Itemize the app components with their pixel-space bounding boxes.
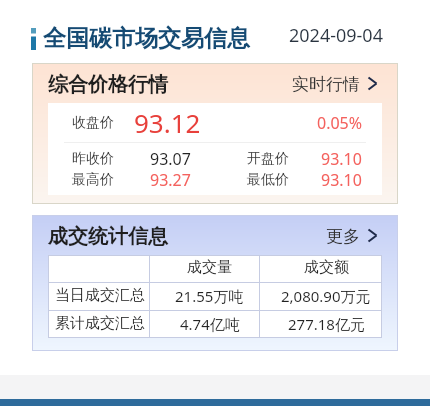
staticText: 当日成交汇总 <box>55 286 145 305</box>
staticText: 4.74亿吨 <box>180 314 240 334</box>
staticText: 93.07 <box>150 148 191 169</box>
staticText: 收盘价 <box>72 114 114 132</box>
staticText: 成交额 <box>304 258 349 277</box>
staticText: 实时行情 <box>292 74 360 95</box>
staticText: 93.10 <box>321 169 362 190</box>
staticText: 0.05% <box>317 112 363 134</box>
staticText: 昨收价 <box>72 150 114 168</box>
staticText: 93.12 <box>134 105 201 140</box>
staticText: 开盘价 <box>247 150 289 168</box>
staticText: 2024-09-04 <box>289 23 383 48</box>
staticText: 93.27 <box>150 169 191 190</box>
staticText: 更多 <box>326 226 360 247</box>
staticText: 最低价 <box>247 171 289 189</box>
staticText: 累计成交汇总 <box>55 314 145 333</box>
staticText: 综合价格行情 <box>48 72 168 97</box>
staticText: 最高价 <box>72 171 114 189</box>
staticText: 277.18亿元 <box>288 314 365 334</box>
staticText: 成交量 <box>187 258 232 277</box>
staticText: 全国碳市场交易信息 <box>43 24 250 53</box>
staticText: 成交统计信息 <box>48 224 168 249</box>
staticText: 21.55万吨 <box>175 286 244 306</box>
staticText: 93.10 <box>321 148 362 169</box>
staticText: 2,080.90万元 <box>281 286 371 306</box>
button[interactable]: 成交统计信息 <box>32 215 398 255</box>
button[interactable]: 综合价格行情 <box>32 63 398 103</box>
